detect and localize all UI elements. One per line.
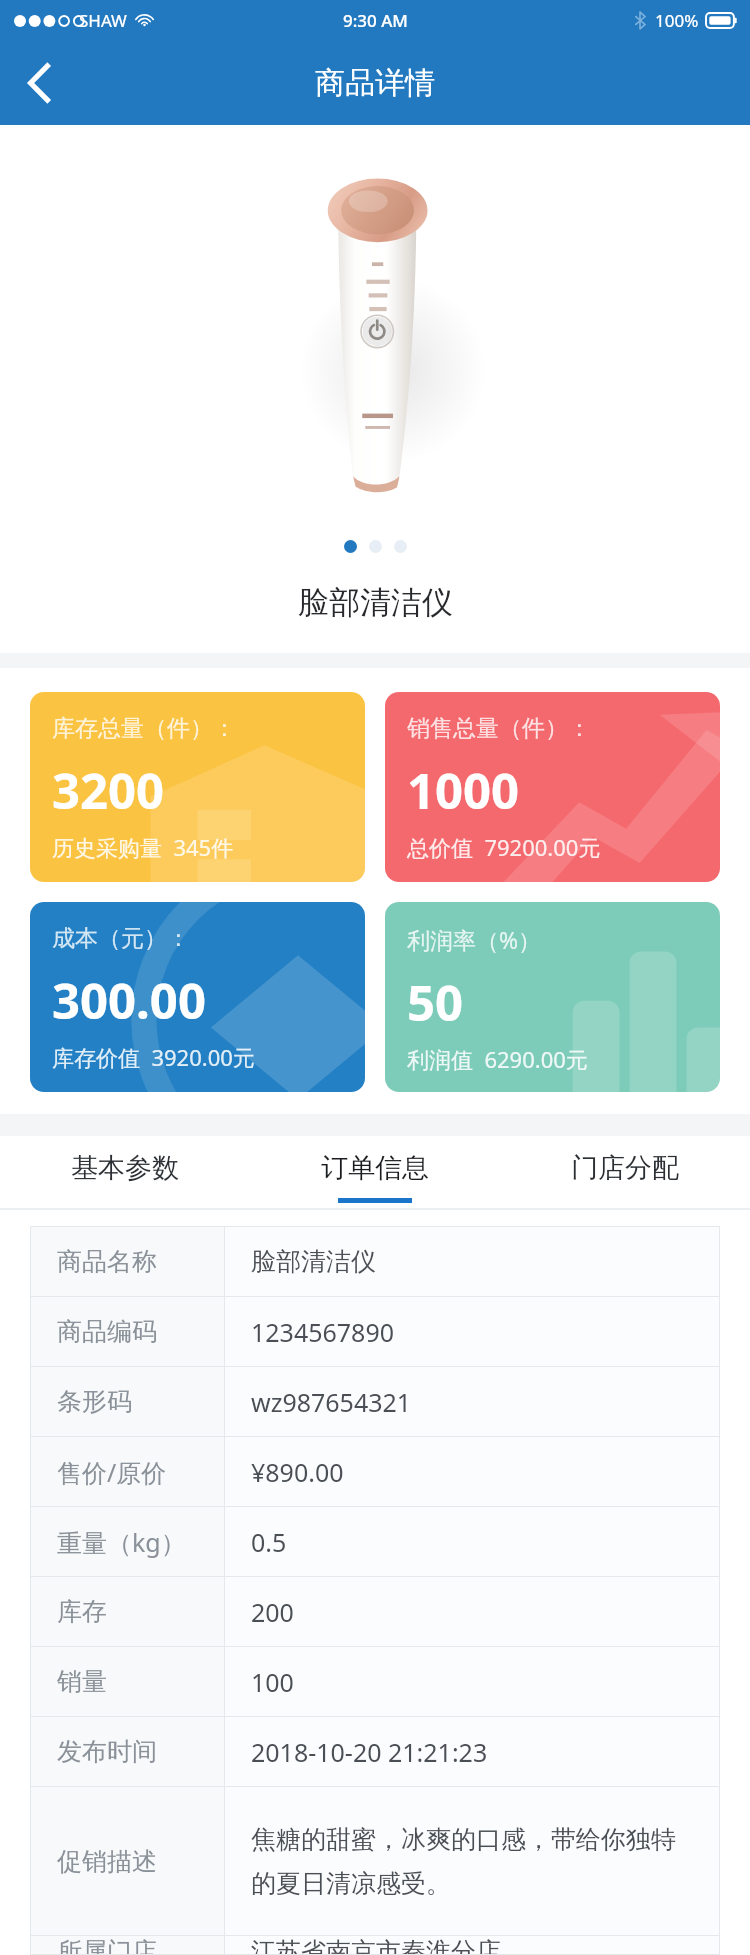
staticText: 销售总量（件）： xyxy=(407,714,591,743)
staticText: 利润值 6290.00元 xyxy=(407,1044,588,1074)
button[interactable]: 发布时间 xyxy=(31,1717,719,1786)
button[interactable]: 库存 xyxy=(31,1577,719,1646)
staticText: wz987654321 xyxy=(251,1385,412,1419)
button[interactable]: 订单信息 xyxy=(250,1136,500,1208)
staticText: 利润率（%） xyxy=(407,924,542,955)
button[interactable]: 重量（kg） xyxy=(31,1507,719,1576)
staticText: 重量（kg） xyxy=(57,1525,186,1559)
button[interactable]: 销量 xyxy=(31,1647,719,1716)
staticText: 300.00 xyxy=(52,967,206,1034)
staticText: 成本（元）： xyxy=(52,924,190,953)
staticText: 1234567890 xyxy=(251,1315,395,1349)
button[interactable]: 利润率（%） xyxy=(385,902,720,1092)
staticText: 发布时间 xyxy=(57,1736,157,1767)
staticText: 100% xyxy=(655,9,699,32)
button[interactable]: 成本（元）： xyxy=(30,902,365,1092)
button[interactable]: 商品编码 xyxy=(31,1297,719,1366)
staticText: 门店分配 xyxy=(571,1151,679,1185)
staticText: 库存总量（件）： xyxy=(52,714,236,743)
staticText: 基本参数 xyxy=(71,1151,179,1185)
staticText: 2018-10-20 21:21:23 xyxy=(251,1735,488,1769)
staticText: 200 xyxy=(251,1595,294,1629)
staticText: 商品编码 xyxy=(57,1316,157,1347)
staticText: 条形码 xyxy=(57,1386,132,1417)
button[interactable]: 促销描述 xyxy=(31,1787,719,1935)
staticText: 3200 xyxy=(52,757,165,824)
staticText: 库存 xyxy=(57,1596,107,1627)
staticText: 1000 xyxy=(407,757,520,824)
staticText: 促销描述 xyxy=(57,1846,157,1877)
button[interactable]: 基本参数 xyxy=(0,1136,250,1208)
staticText: 脸部清洁仪 xyxy=(251,1246,376,1277)
staticText: 江苏省南京市秦淮分店 xyxy=(251,1936,501,1954)
button[interactable]: 销售总量（件）： xyxy=(385,692,720,882)
staticText: 100 xyxy=(251,1665,294,1699)
button[interactable]: 售价/原价 xyxy=(31,1437,719,1506)
staticText: 订单信息 xyxy=(321,1151,429,1185)
staticText: 总价值 79200.00元 xyxy=(407,832,601,862)
staticText: 销量 xyxy=(57,1666,107,1697)
staticText: 所属门店 xyxy=(57,1936,157,1954)
button[interactable]: 库存总量（件）： xyxy=(30,692,365,882)
staticText: 库存价值 3920.00元 xyxy=(52,1042,255,1072)
staticText: 9:30 AM xyxy=(343,9,408,32)
staticText: 商品详情 xyxy=(315,64,435,102)
button[interactable]: 所属门店 xyxy=(31,1936,719,1954)
staticText: 售价/原价 xyxy=(57,1455,167,1489)
staticText: SHAW xyxy=(79,9,127,32)
staticText: 历史采购量 345件 xyxy=(52,832,234,862)
button[interactable]: 条形码 xyxy=(31,1367,719,1436)
button[interactable]: 门店分配 xyxy=(500,1136,750,1208)
button[interactable]: Back xyxy=(0,40,78,125)
staticText: 50 xyxy=(407,969,464,1036)
staticText: 商品名称 xyxy=(57,1246,157,1277)
button[interactable]: 商品名称 xyxy=(31,1227,719,1296)
staticText: 焦糖的甜蜜，冰爽的口感，带给你独特的夏日清凉感受。 xyxy=(251,1824,697,1899)
staticText: ¥890.00 xyxy=(251,1455,344,1489)
staticText: 0.5 xyxy=(251,1525,287,1559)
staticText: 脸部清洁仪 xyxy=(298,583,453,622)
